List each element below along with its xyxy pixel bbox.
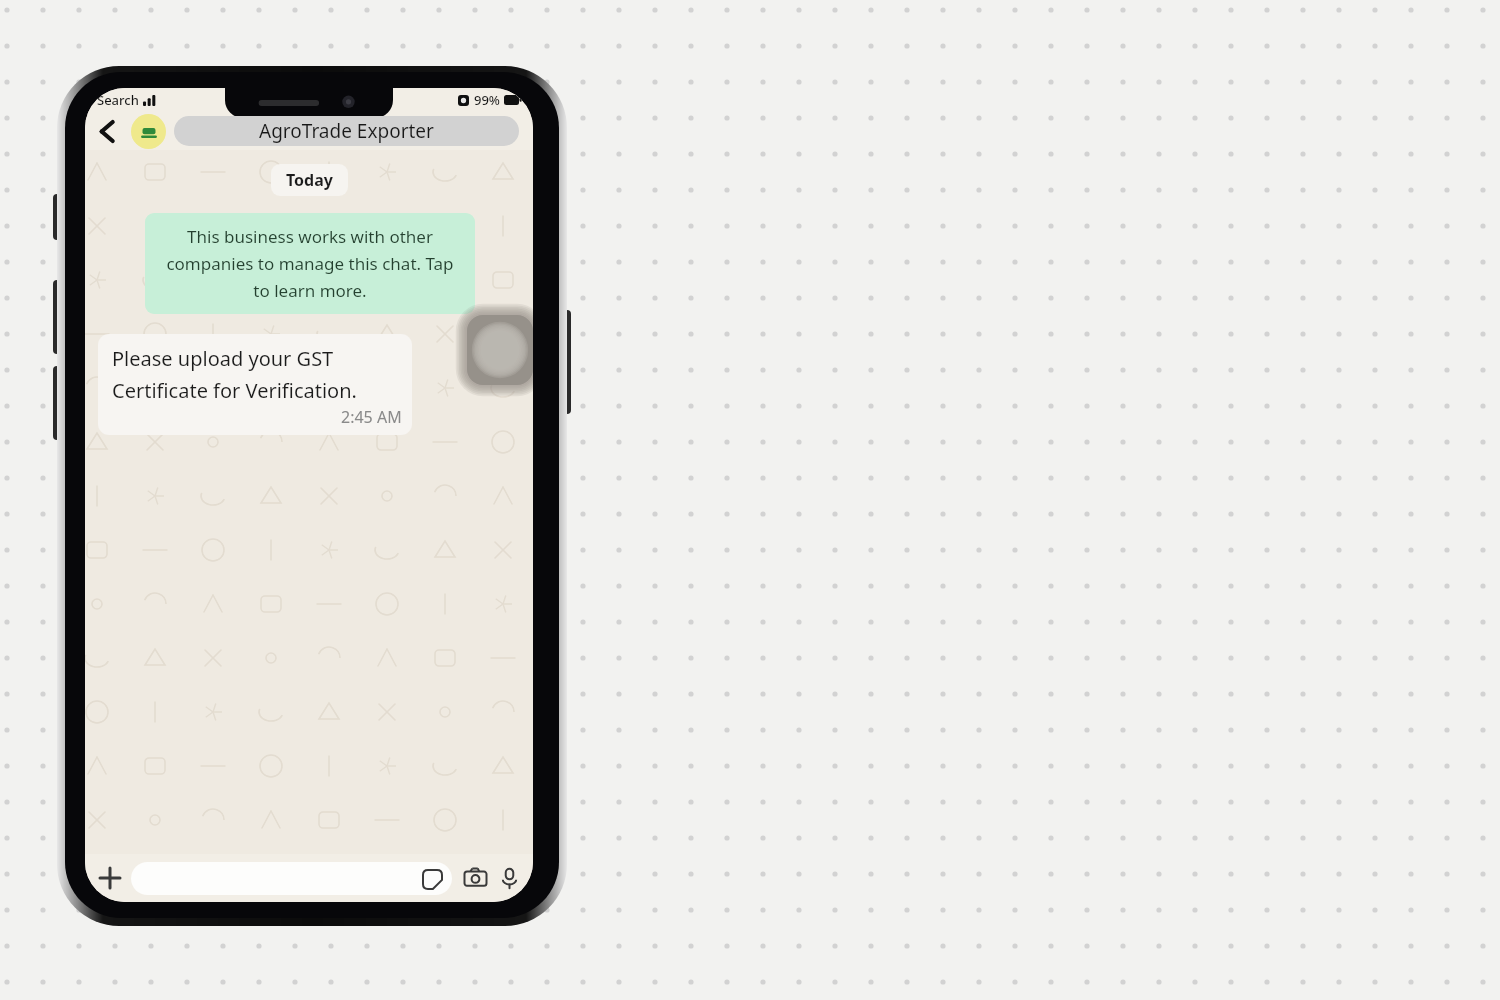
staticText: This business works with other companies…: [157, 225, 463, 302]
staticText: 2:45 AM: [341, 406, 402, 428]
button[interactable]: Camera: [459, 862, 491, 894]
staticText: Please upload your GST Certificate for V…: [112, 345, 402, 404]
button[interactable]: Sticker: [421, 868, 443, 890]
button[interactable]: Attach: [93, 861, 127, 895]
staticText: 99%: [474, 91, 500, 109]
button[interactable]: This business works with other companies…: [145, 213, 475, 314]
button[interactable]: [131, 114, 166, 149]
staticText: Search: [97, 91, 139, 109]
button[interactable]: Please upload your GST Certificate for V…: [98, 334, 412, 435]
button[interactable]: Voice message: [493, 862, 525, 894]
button[interactable]: Sticker: [131, 862, 452, 895]
button[interactable]: Back: [91, 114, 125, 148]
staticText: Today: [286, 169, 333, 191]
staticText: AgroTrade Exporter: [259, 118, 434, 144]
button[interactable]: AgroTrade Exporter: [174, 116, 519, 146]
